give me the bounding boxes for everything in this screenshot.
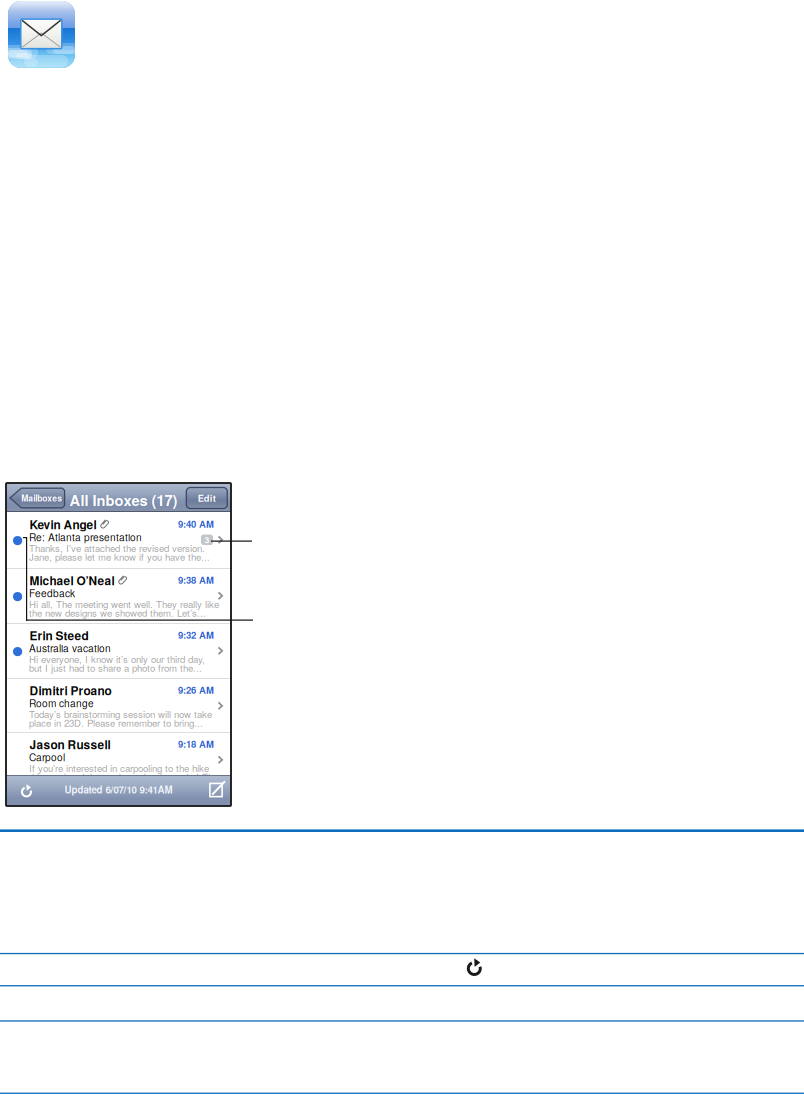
button[interactable]: Kevin Angel [6, 512, 231, 568]
button[interactable]: Edit [186, 487, 227, 508]
staticText: 9:40 AM [178, 517, 214, 531]
staticText: Today’s brainstorming session will now t… [29, 707, 212, 721]
staticText: the new designs we showed them. Let’s... [29, 606, 206, 619]
staticText: If you’re interested in carpooling to th… [29, 761, 209, 775]
staticText: place in 23D. Please remember to bring..… [29, 716, 203, 729]
staticText: Hi all, The meeting went well. They real… [29, 597, 219, 611]
staticText: Australia vacation [29, 641, 111, 655]
staticText: Updated 6/07/10 9:41AM [64, 782, 172, 796]
staticText: Dimitri Proano [30, 682, 112, 699]
staticText: Hi everyone, I know it’s only our third … [29, 652, 205, 666]
staticText: Mailboxes [21, 492, 62, 504]
staticText: Kevin Angel [30, 516, 97, 533]
staticText: 3 [204, 534, 209, 546]
button[interactable]: Mailboxes [9, 487, 65, 508]
staticText: Erin Steed [30, 627, 89, 644]
staticText: 9:32 AM [178, 628, 214, 642]
staticText: 9:18 AM [178, 737, 214, 751]
staticText: All Inboxes (17) [69, 490, 177, 511]
button[interactable]: Erin Steed [6, 623, 231, 678]
staticText: 9:26 AM [178, 683, 214, 697]
button[interactable]: Michael O’Neal [6, 568, 231, 623]
button[interactable]: Jason Russell [6, 732, 231, 775]
staticText: Room change [29, 696, 94, 710]
staticText: Re: Atlanta presentation [29, 530, 142, 544]
button[interactable]: Dimitri Proano [6, 678, 231, 732]
button[interactable]: Compose [205, 779, 227, 801]
staticText: Jane, please let me know if you have the… [29, 550, 210, 563]
staticText: Thanks, I've attached the revised versio… [29, 541, 205, 555]
staticText: Carpool [29, 750, 65, 764]
staticText: Feedback [29, 586, 75, 600]
staticText: Edit [198, 491, 216, 505]
staticText: this weekend, let me know by the end of … [29, 770, 222, 783]
staticText: 9:38 AM [178, 573, 214, 587]
staticText: Jason Russell [30, 736, 111, 753]
staticText: but I just had to share a photo from the… [29, 661, 202, 674]
staticText: Michael O’Neal [30, 572, 115, 589]
button[interactable]: Refresh [15, 778, 39, 802]
